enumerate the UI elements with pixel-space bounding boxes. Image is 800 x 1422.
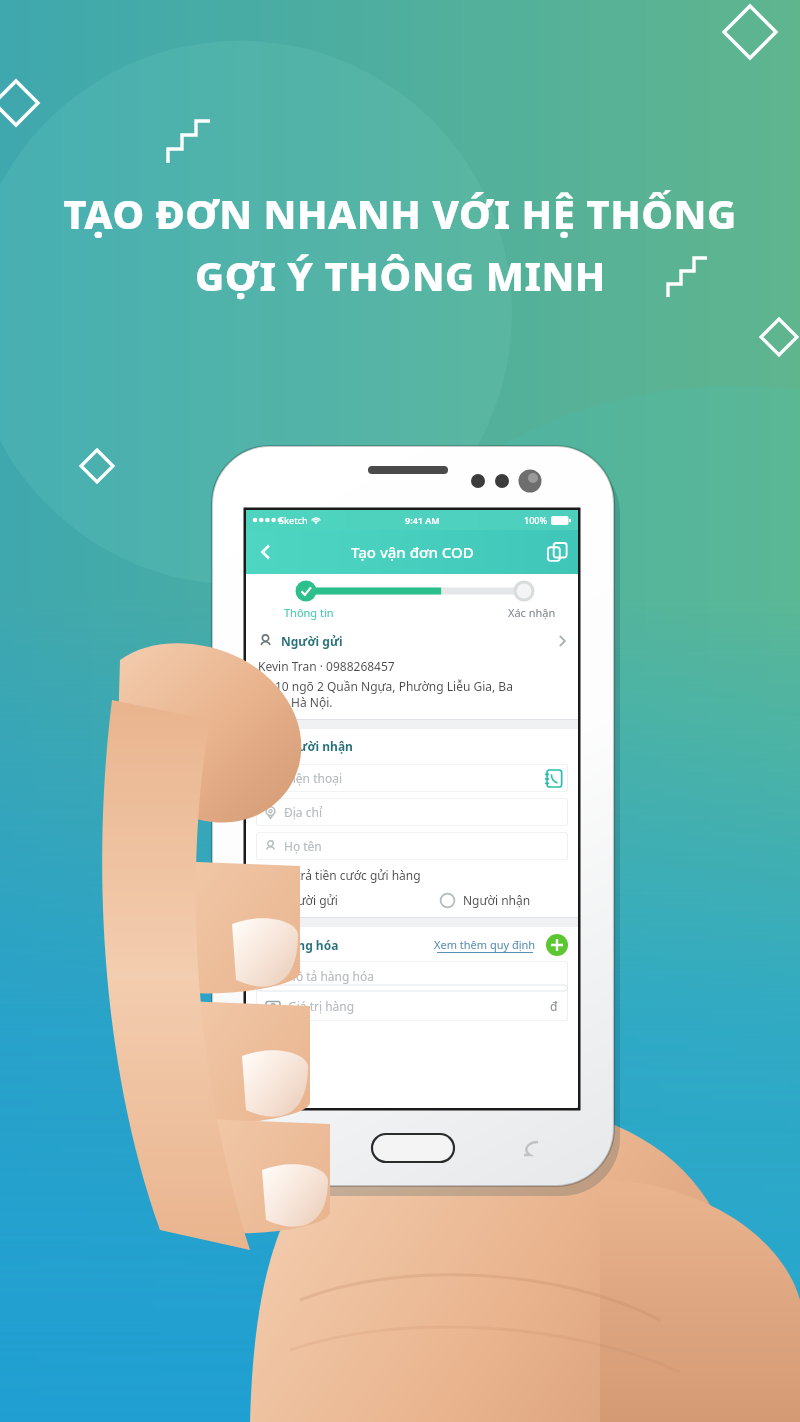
staticText: Xác nhận [508,605,556,620]
button[interactable]: Back [246,532,286,572]
staticText: Mô tả hàng hóa [285,968,374,984]
staticText: 9:41 AM [405,514,440,526]
staticText: Người nhận [281,738,353,754]
staticText: Người gửi [281,633,343,649]
button[interactable]: Họ tên [256,832,568,860]
button[interactable]: Add item [546,934,568,956]
button[interactable]: Điện thoại [256,764,568,792]
staticText: GỢI Ý THÔNG MINH [195,248,606,302]
staticText: Địa chỉ [284,804,322,820]
button[interactable]: Người nhận [440,892,566,908]
staticText: 100% [524,514,548,526]
staticText: Sketch [279,514,308,526]
staticText: Số 10 ngõ 2 Quần Ngựa, Phường Liễu Gia, … [258,678,513,711]
staticText: Tạo vận đơn COD [351,542,474,562]
staticText: đ [550,998,558,1014]
button[interactable]: Người gửi [258,892,338,908]
staticText: Họ tên [284,838,322,854]
staticText: Người gửi [281,892,338,908]
button[interactable]: Xem thêm quy định [434,937,536,953]
staticText: Thông tin [284,605,334,620]
staticText: 1. [266,968,277,984]
button[interactable]: Choose contact [545,770,562,787]
staticText: Hàng hóa [281,937,339,953]
staticText: Người trả tiền cước gửi hàng [258,867,421,883]
staticText: Kevin Tran · 0988268457 [258,658,395,674]
button[interactable]: Địa chỉ [256,798,568,826]
button[interactable]: 1. [256,961,568,991]
staticText: Người nhận [463,892,531,908]
button[interactable]: Người gửi [246,626,578,719]
button[interactable]: Copy [536,531,578,573]
staticText: Điện thoại [284,770,342,786]
staticText: Giá trị hàng [288,998,355,1014]
staticText: TẠO ĐƠN NHANH VỚI HỆ THỐNG [63,186,737,240]
button[interactable]: Giá trị hàng [256,991,568,1021]
staticText: Xem thêm quy định [434,937,536,952]
